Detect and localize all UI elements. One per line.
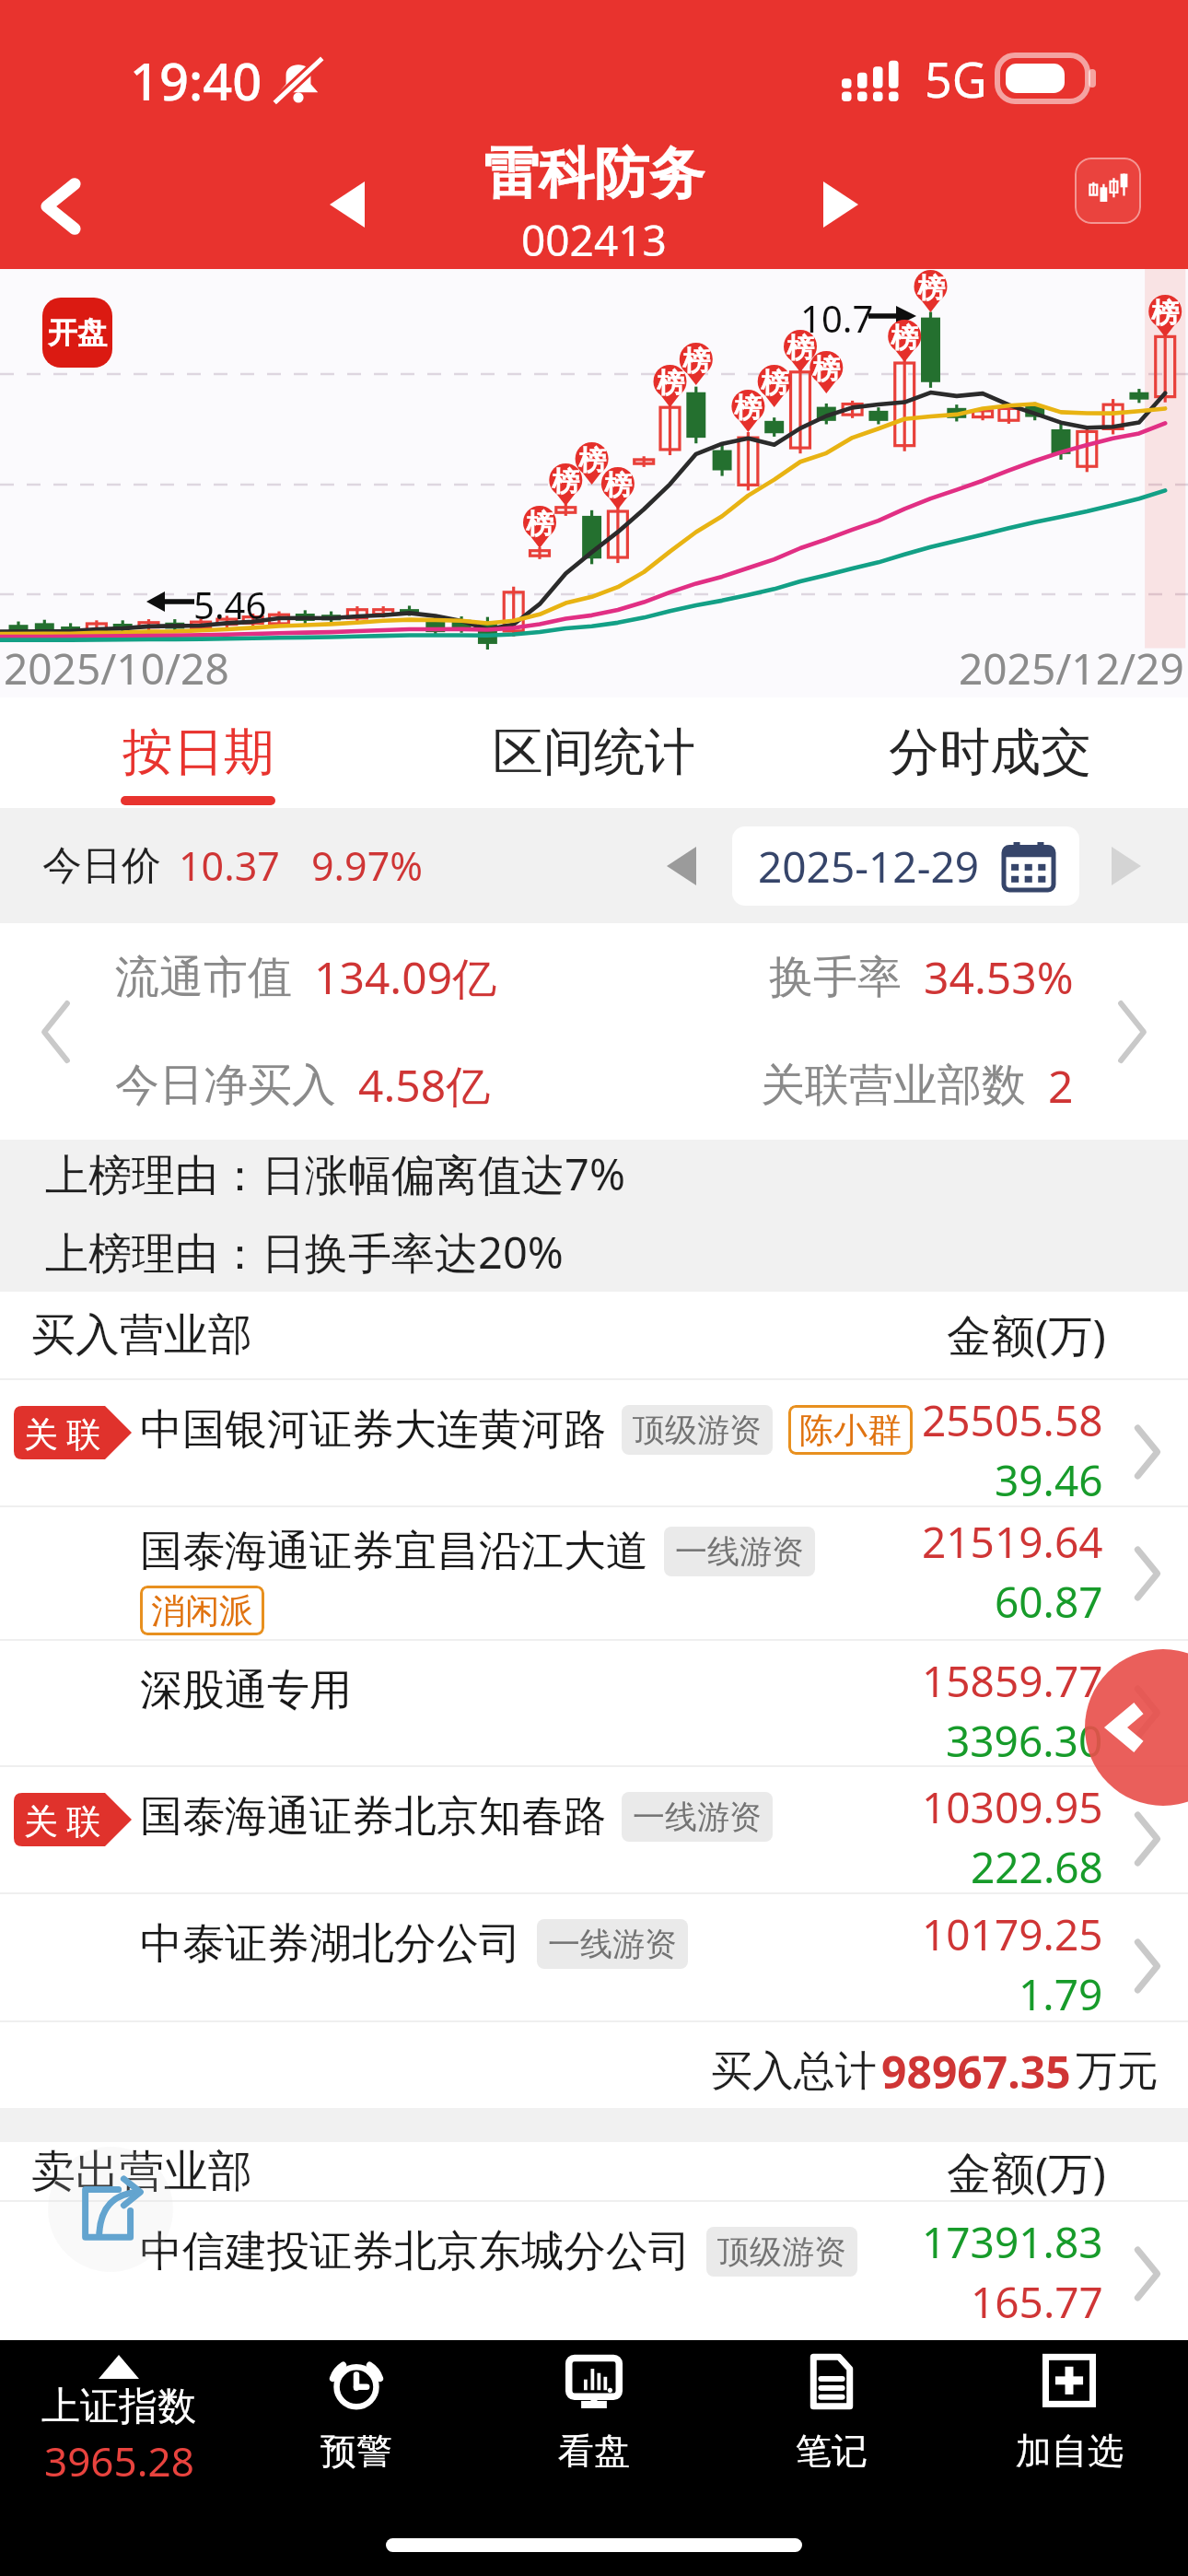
staticText: 3965.28	[44, 2433, 194, 2488]
staticText: 分时成交	[889, 720, 1091, 784]
staticText: 榜	[891, 321, 918, 356]
staticText: 上榜理由：日换手率达20%	[45, 1223, 564, 1282]
button[interactable]: 上证指数	[0, 2355, 238, 2488]
staticText: 顶级游资	[633, 1410, 762, 1450]
staticText: 深股通专用	[140, 1664, 352, 1717]
button[interactable]: 区间统计	[396, 697, 792, 808]
staticText: 10.7	[800, 293, 874, 343]
staticText: 5G	[925, 46, 987, 111]
staticText: 榜	[761, 366, 788, 401]
staticText: 笔记	[796, 2429, 868, 2474]
button[interactable]: K line chart	[1075, 158, 1141, 224]
button[interactable]: Market view	[475, 2355, 713, 2474]
staticText: 榜	[734, 391, 762, 426]
button[interactable]: 国泰海通证券宜昌沿江大道	[0, 1507, 1188, 1639]
staticText: 榜	[604, 468, 632, 503]
button[interactable]: Next day	[1098, 837, 1155, 895]
staticText: 榜	[917, 271, 945, 306]
staticText: 榜	[1151, 296, 1179, 331]
staticText: 开盘	[48, 314, 107, 351]
staticText: 2025/12/29	[959, 639, 1184, 697]
staticText: 看盘	[558, 2429, 630, 2474]
staticText: 上榜理由：日涨幅偏离值达7%	[45, 1144, 625, 1203]
staticText: 榜	[812, 352, 840, 387]
staticText: 134.09亿	[314, 947, 497, 1008]
staticText: 9.97%	[311, 838, 424, 893]
staticText: 国泰海通证券宜昌沿江大道	[140, 1525, 648, 1578]
staticText: 榜	[526, 507, 553, 542]
staticText: 榜	[657, 366, 684, 401]
button[interactable]: Add to watchlist	[950, 2355, 1188, 2474]
staticText: 98967.35	[881, 2042, 1071, 2102]
staticText: 今日价	[42, 841, 161, 891]
staticText: 19:40	[130, 45, 262, 115]
staticText: 陈小群	[799, 1409, 902, 1452]
button[interactable]: Notes	[713, 2355, 950, 2474]
staticText: 中泰证券湖北分公司	[140, 1917, 521, 1971]
staticText: 按日期	[122, 720, 274, 784]
staticText: 002413	[521, 211, 667, 269]
button[interactable]: 深股通专用	[0, 1641, 1188, 1765]
staticText: 上证指数	[41, 2383, 196, 2431]
staticText: 买入营业部	[31, 1307, 252, 1363]
staticText: 165.77	[971, 2273, 1103, 2331]
staticText: 换手率	[769, 950, 902, 1005]
staticText: 60.87	[995, 1573, 1103, 1631]
staticText: 关 联	[24, 1410, 101, 1457]
staticText: 3396.30	[946, 1712, 1103, 1770]
staticText: 榜	[552, 464, 579, 499]
staticText: 国泰海通证券北京知春路	[140, 1790, 606, 1844]
button[interactable]: Collapse panel	[1085, 1649, 1188, 1806]
button[interactable]: 按日期	[0, 697, 396, 808]
staticText: 39.46	[995, 1451, 1103, 1509]
button[interactable]: 关 联	[0, 1767, 1188, 1892]
staticText: 榜	[786, 331, 814, 366]
staticText: 1.79	[1019, 1965, 1103, 2023]
staticText: 预警	[320, 2429, 392, 2474]
staticText: 222.68	[971, 1838, 1103, 1896]
staticText: 区间统计	[493, 720, 695, 784]
button[interactable]: Share	[48, 2147, 173, 2272]
staticText: 2025/10/28	[4, 639, 229, 697]
staticText: 万元	[1076, 2045, 1159, 2098]
button[interactable]: 分时成交	[792, 697, 1188, 808]
staticText: 一线游资	[633, 1797, 762, 1837]
staticText: 金额(万)	[947, 2142, 1106, 2200]
staticText: 雷科防务	[483, 139, 705, 209]
button[interactable]: Back	[10, 156, 111, 257]
staticText: 榜	[682, 344, 710, 379]
button[interactable]: Previous stock	[303, 160, 391, 249]
staticText: 顶级游资	[717, 2231, 846, 2272]
staticText: 中信建投证券北京东城分公司	[140, 2225, 691, 2278]
staticText: 2	[1048, 1056, 1074, 1116]
staticText: 今日净买入	[115, 1058, 336, 1113]
staticText: 榜	[578, 443, 606, 478]
staticText: 25505.58	[922, 1391, 1103, 1449]
button[interactable]: Alerts	[238, 2355, 475, 2474]
staticText: 5.46	[193, 580, 267, 629]
staticText: 关联营业部数	[761, 1058, 1026, 1113]
staticText: 15859.77	[922, 1652, 1103, 1710]
button[interactable]: 2025-12-29	[732, 826, 1079, 906]
button[interactable]: Next stock	[797, 160, 885, 249]
staticText: 卖出营业部	[31, 2144, 252, 2199]
staticText: 金额(万)	[947, 1305, 1106, 1365]
staticText: 17391.83	[922, 2213, 1103, 2271]
staticText: 2025-12-29	[758, 837, 980, 896]
staticText: 中国银河证券大连黄河路	[140, 1403, 606, 1457]
staticText: 10179.25	[922, 1905, 1103, 1963]
button[interactable]: 中泰证券湖北分公司	[0, 1894, 1188, 2020]
staticText: 关 联	[24, 1797, 101, 1844]
staticText: 10309.95	[922, 1778, 1103, 1836]
staticText: 34.53%	[924, 947, 1074, 1007]
staticText: 买入总计	[711, 2045, 877, 2098]
button[interactable]: Previous day	[653, 837, 710, 895]
button[interactable]: 中信建投证券北京东城分公司	[0, 2202, 1188, 2338]
staticText: 消闲派	[151, 1589, 253, 1633]
staticText: 一线游资	[675, 1531, 804, 1572]
button[interactable]: 关 联	[0, 1380, 1188, 1505]
staticText: 流通市值	[115, 950, 292, 1005]
staticText: 一线游资	[548, 1924, 677, 1964]
staticText: 4.58亿	[358, 1055, 491, 1116]
staticText: 21519.64	[922, 1513, 1103, 1571]
